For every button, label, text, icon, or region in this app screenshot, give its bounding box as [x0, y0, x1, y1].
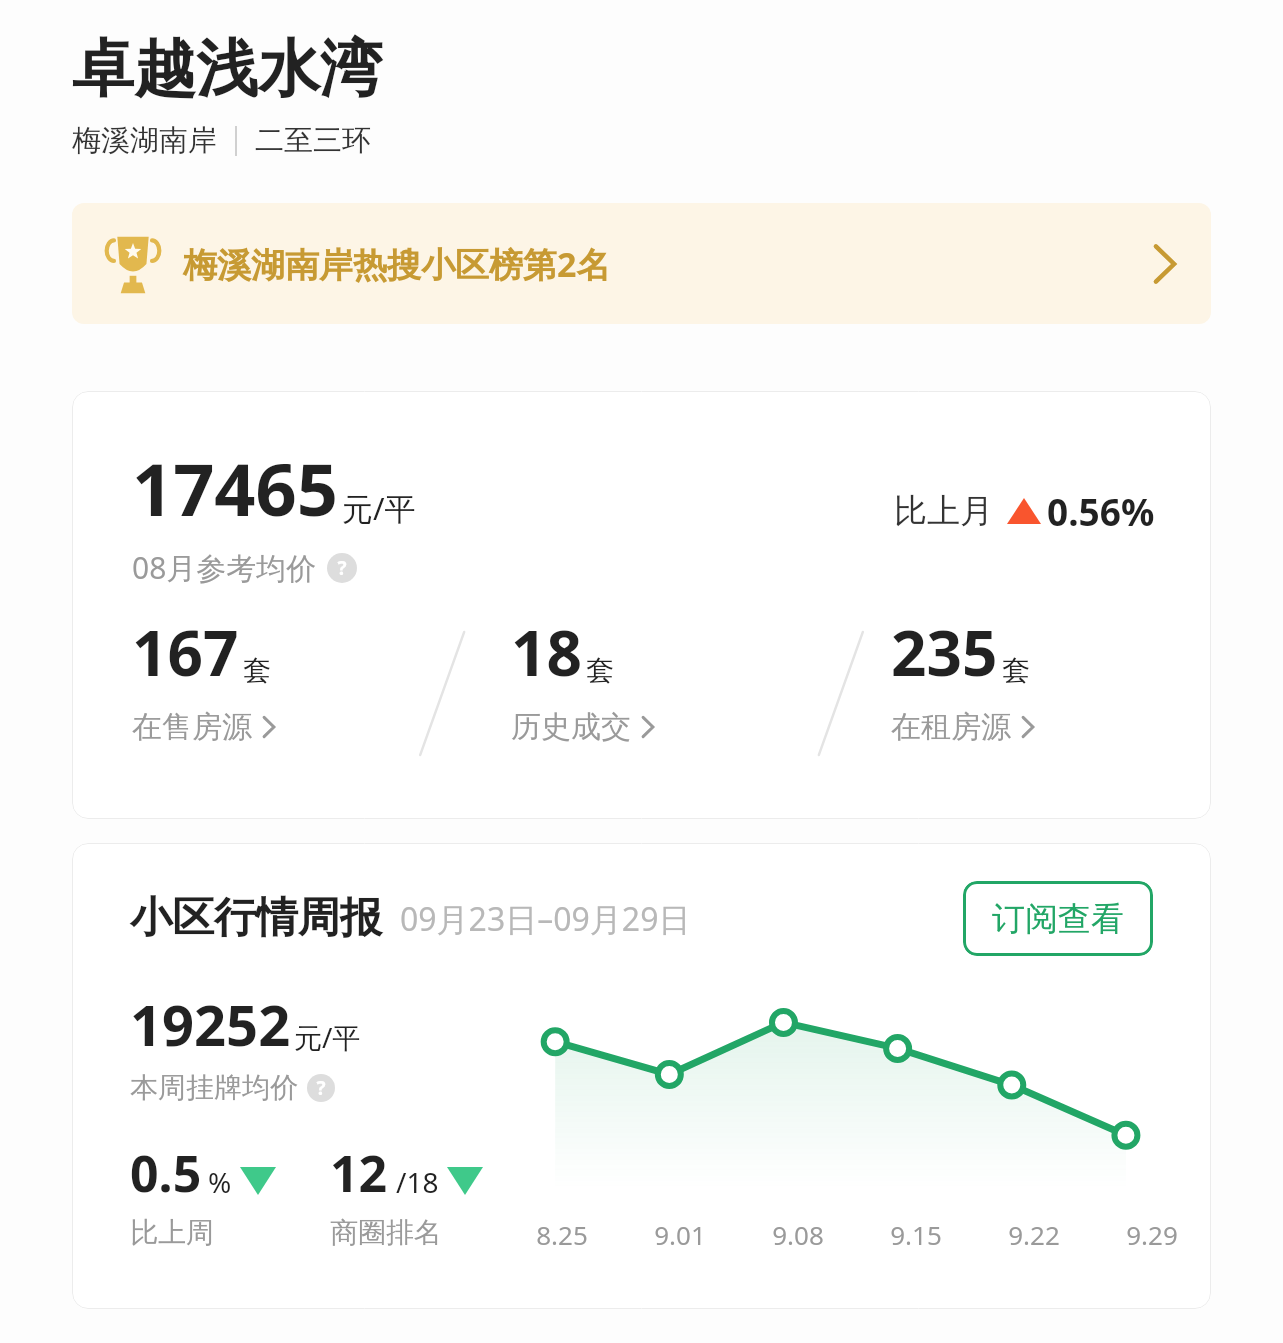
staticText: 梅溪湖南岸 [72, 122, 217, 159]
staticText: 在租房源 [891, 708, 1011, 746]
staticText: 套 [1002, 653, 1030, 688]
staticText: 9.29 [1126, 1217, 1178, 1252]
staticText: 比上周 [130, 1215, 214, 1250]
staticText: % [208, 1163, 232, 1201]
staticText: 在售房源 [132, 708, 252, 746]
staticText: 17465 [132, 439, 338, 537]
staticText: 套 [243, 653, 271, 688]
staticText: 9.08 [772, 1217, 824, 1252]
staticText: 12 [330, 1139, 388, 1207]
staticText: 元/平 [342, 487, 416, 529]
staticText: 09月23日–09月29日 [400, 897, 691, 941]
other: Trophy [105, 233, 161, 295]
staticText: 小区行情周报 [130, 892, 382, 945]
staticText: 本周挂牌均价 [130, 1070, 298, 1105]
staticText: 167 [132, 610, 239, 694]
button[interactable]: 订阅查看 [963, 881, 1153, 956]
staticText: 235 [891, 610, 998, 694]
button[interactable]: Trophy [72, 203, 1211, 324]
staticText: 订阅查看 [992, 898, 1124, 940]
button[interactable]: 18 [451, 610, 831, 790]
staticText: 二至三环 [255, 122, 371, 159]
button[interactable]: 08月参考均价 [132, 547, 357, 588]
button[interactable]: 167 [72, 610, 451, 790]
staticText: 元/平 [294, 1018, 361, 1056]
staticText: ? [316, 1075, 326, 1101]
staticText: 19252 [130, 986, 291, 1062]
staticText: 0.5 [130, 1139, 202, 1207]
button[interactable]: 235 [831, 610, 1211, 790]
staticText: 比上月 [894, 490, 993, 532]
staticText: 商圈排名 [330, 1215, 442, 1250]
staticText: 9.15 [890, 1217, 942, 1252]
button[interactable]: 本周挂牌均价 [130, 1070, 335, 1105]
staticText: 9.22 [1008, 1217, 1060, 1252]
staticText: /18 [396, 1163, 439, 1201]
staticText: 梅溪湖南岸热搜小区榜第2名 [183, 241, 611, 287]
staticText: 卓越浅水湾 [72, 30, 382, 108]
staticText: ? [337, 555, 347, 581]
staticText: 9.01 [654, 1217, 706, 1252]
staticText: 历史成交 [511, 708, 631, 746]
staticText: 18 [511, 610, 582, 694]
staticText: 套 [586, 653, 614, 688]
staticText: 0.56% [1047, 486, 1155, 536]
staticText: 8.25 [536, 1217, 588, 1252]
staticText: 08月参考均价 [132, 547, 317, 588]
